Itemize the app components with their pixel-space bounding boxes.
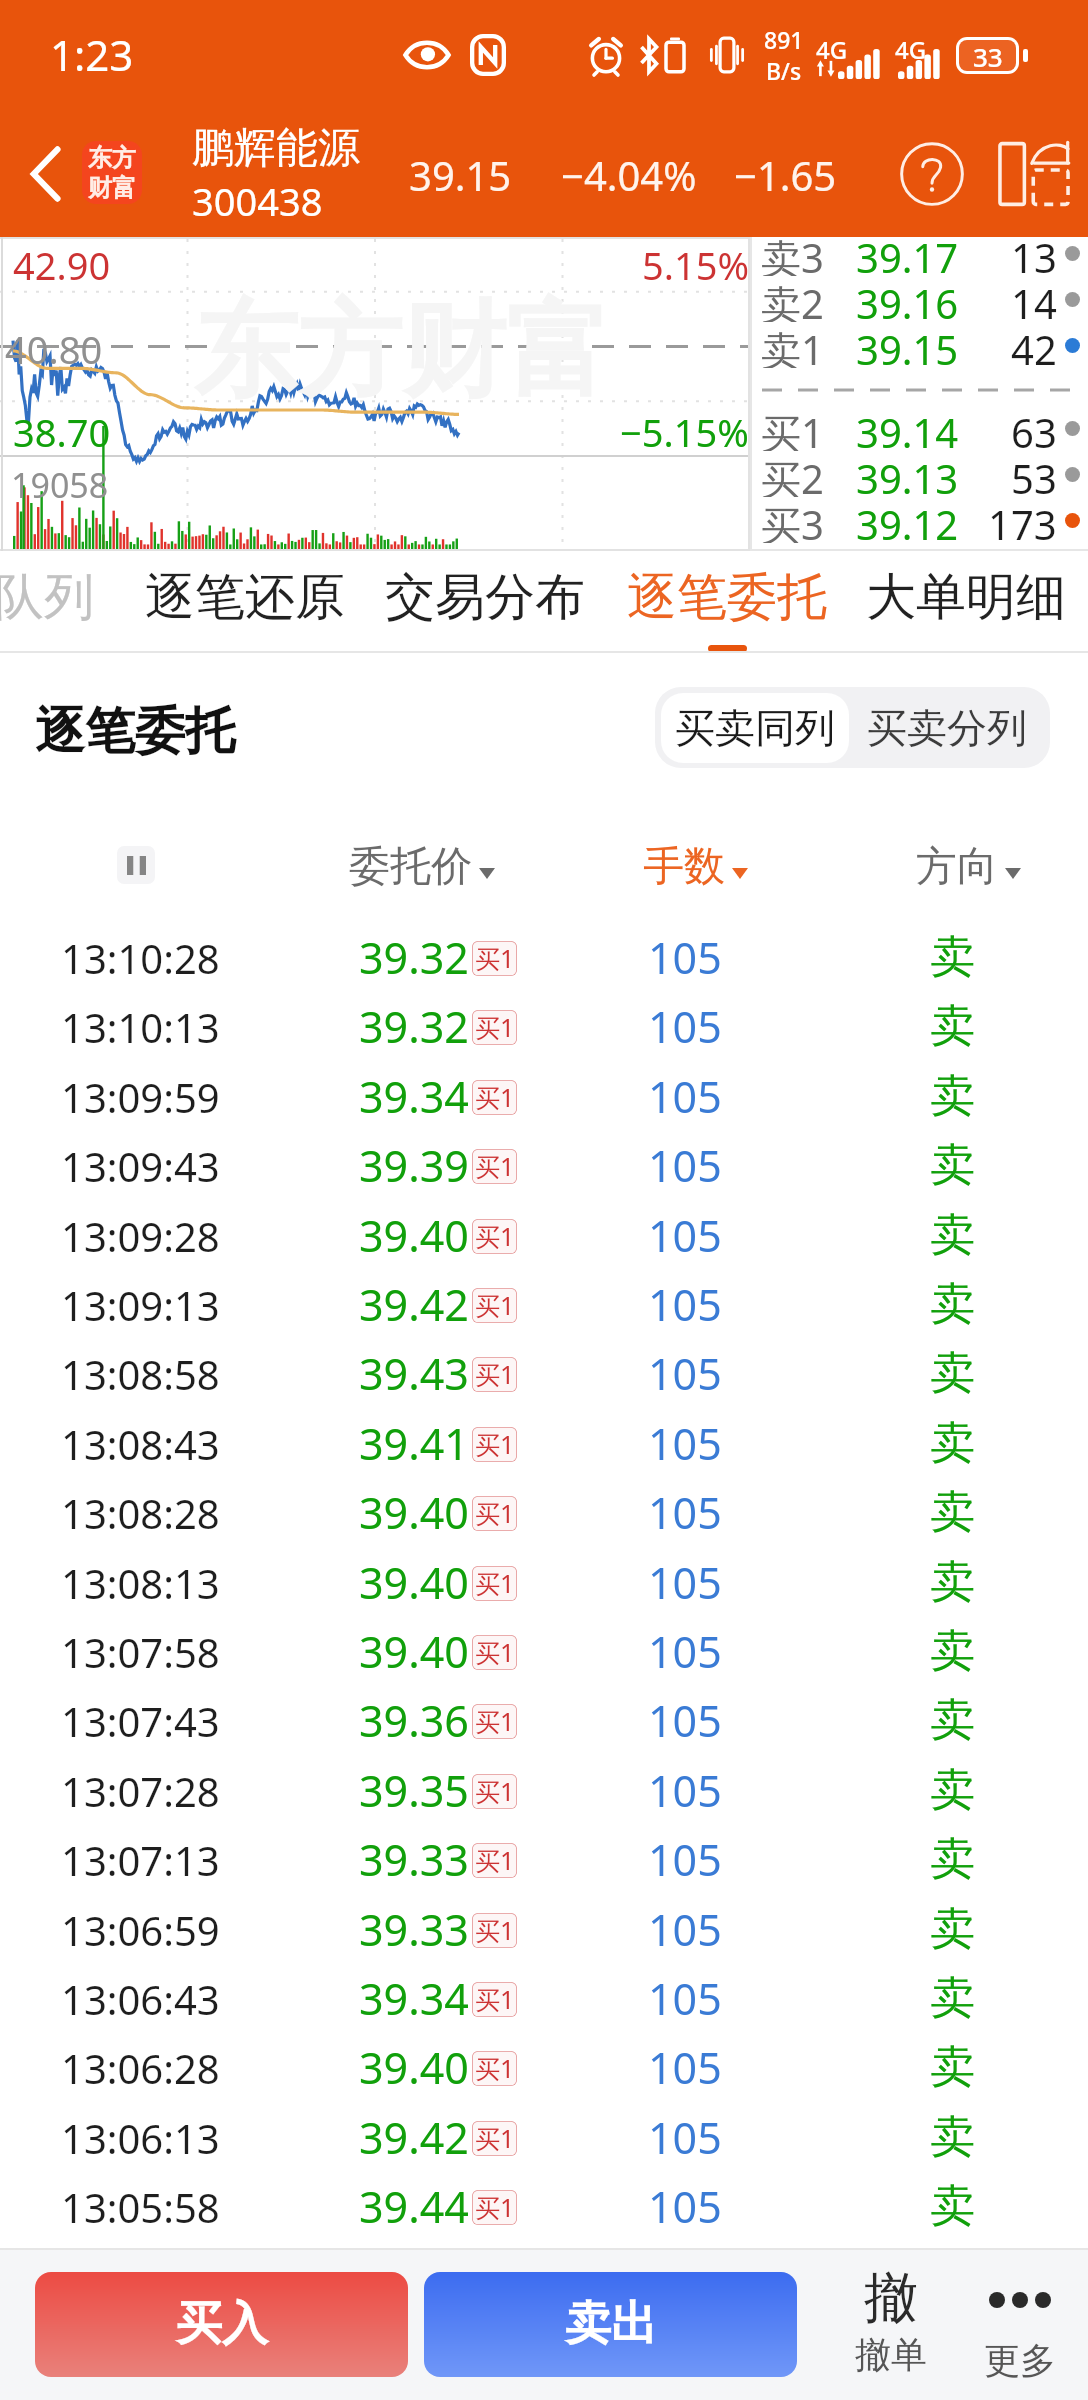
button[interactable]: 卖3 xyxy=(750,230,1088,276)
staticText: 委托价 xyxy=(349,841,472,893)
button[interactable]: 13:09:59 xyxy=(0,1063,1088,1132)
staticText: 买1 xyxy=(475,2121,515,2155)
button[interactable]: 交易分布 xyxy=(381,551,589,653)
staticText: 卖 xyxy=(930,2178,975,2235)
button[interactable]: 逐笔还原 xyxy=(141,551,349,653)
button[interactable]: 买2 xyxy=(750,451,1088,497)
staticText: 卖出 xyxy=(565,2295,657,2353)
staticText: 39.13 xyxy=(856,451,959,497)
staticText: 买卖分列 xyxy=(867,703,1027,753)
staticText: 105 xyxy=(648,1067,722,1126)
button[interactable]: 买卖同列 xyxy=(661,693,849,763)
staticText: B/s xyxy=(766,55,802,86)
staticText: 13:09:59 xyxy=(61,1070,220,1124)
staticText: 13:08:43 xyxy=(61,1417,220,1471)
staticText: 39.33 xyxy=(359,1900,469,1959)
button[interactable]: 队列 xyxy=(0,551,148,653)
button[interactable]: 13:06:59 xyxy=(0,1896,1088,1965)
button[interactable]: 更多 xyxy=(952,2250,1088,2400)
staticText: 买1 xyxy=(475,2190,515,2224)
staticText: 4G xyxy=(816,33,848,66)
staticText: 39.40 xyxy=(359,1622,469,1681)
staticText: 买1 xyxy=(475,1288,515,1322)
staticText: 买3 xyxy=(761,497,824,543)
button[interactable]: 13:07:58 xyxy=(0,1618,1088,1687)
staticText: 39.32 xyxy=(359,928,469,987)
staticText: 13:09:13 xyxy=(61,1278,220,1332)
staticText: 39.40 xyxy=(359,1553,469,1612)
staticText: 逐笔委托 xyxy=(35,700,235,763)
staticText: 39.42 xyxy=(359,2108,469,2167)
button[interactable]: 买3 xyxy=(750,497,1088,543)
staticText: 13:09:28 xyxy=(61,1209,220,1263)
button[interactable]: 13:08:13 xyxy=(0,1549,1088,1618)
staticText: 买1 xyxy=(475,2051,515,2085)
staticText: 13:08:58 xyxy=(61,1347,220,1401)
button[interactable]: 13:08:43 xyxy=(0,1410,1088,1479)
staticText: 卖 xyxy=(930,1901,975,1958)
button[interactable]: 13:08:58 xyxy=(0,1340,1088,1409)
button[interactable]: 帮助 xyxy=(880,114,984,234)
staticText: 39.40 xyxy=(359,2038,469,2097)
button[interactable]: 方向 xyxy=(858,810,1078,924)
button[interactable]: 13:07:43 xyxy=(0,1687,1088,1756)
button[interactable]: 买1 xyxy=(750,405,1088,451)
staticText: 手数 xyxy=(643,841,725,893)
button[interactable]: 13:08:28 xyxy=(0,1479,1088,1548)
button[interactable]: 委托价 xyxy=(312,810,532,924)
staticText: 105 xyxy=(648,2177,722,2236)
staticText: 53 xyxy=(1011,451,1057,497)
staticText: 13:08:28 xyxy=(61,1486,220,1540)
staticText: 撤单 xyxy=(855,2332,927,2377)
staticText: 40.80 xyxy=(5,323,103,375)
button[interactable]: 卖2 xyxy=(750,276,1088,322)
staticText: 105 xyxy=(648,1136,722,1195)
staticText: 13:06:13 xyxy=(61,2111,220,2165)
button[interactable]: 返回 xyxy=(0,114,92,234)
staticText: 13:10:13 xyxy=(61,1000,220,1054)
staticText: 买1 xyxy=(475,1496,515,1530)
staticText: 39.16 xyxy=(856,276,959,322)
staticText: 卖 xyxy=(930,998,975,1055)
staticText: 39.12 xyxy=(856,497,959,543)
staticText: 39.34 xyxy=(359,1067,469,1126)
staticText: 交易分布 xyxy=(385,566,585,629)
button[interactable]: 手数 xyxy=(585,810,805,924)
staticText: 买1 xyxy=(475,1913,515,1947)
staticText: 买1 xyxy=(475,1357,515,1391)
button[interactable]: 13:07:28 xyxy=(0,1757,1088,1826)
staticText: 买1 xyxy=(475,1080,515,1114)
staticText: 买1 xyxy=(475,1704,515,1738)
staticText: 卖2 xyxy=(761,276,824,322)
button[interactable]: 暂停刷新 xyxy=(117,846,155,884)
button[interactable]: 13:10:28 xyxy=(0,924,1088,993)
staticText: 33 xyxy=(973,40,1003,70)
button[interactable]: 卖1 xyxy=(750,322,1088,368)
button[interactable]: 13:10:13 xyxy=(0,993,1088,1062)
staticText: 买入 xyxy=(176,2295,268,2353)
button[interactable]: 13:09:13 xyxy=(0,1271,1088,1340)
staticText: 卖 xyxy=(930,2039,975,2096)
button[interactable]: 横屏 xyxy=(986,114,1082,234)
staticText: 39.14 xyxy=(856,405,959,451)
button[interactable]: 大单明细 xyxy=(862,551,1070,653)
button[interactable]: 13:07:13 xyxy=(0,1826,1088,1895)
staticText: 13:06:43 xyxy=(61,1972,220,2026)
staticText: 39.15 xyxy=(856,322,959,368)
button[interactable]: 13:06:28 xyxy=(0,2034,1088,2103)
button[interactable]: 买入 xyxy=(35,2272,408,2377)
staticText: 买1 xyxy=(475,941,515,975)
button[interactable]: 卖出 xyxy=(424,2272,797,2377)
staticText: 鹏辉能源 xyxy=(192,122,360,175)
button[interactable]: 13:06:43 xyxy=(0,1965,1088,2034)
staticText: 105 xyxy=(648,997,722,1056)
button[interactable]: 13:05:58 xyxy=(0,2173,1088,2242)
button[interactable]: 13:06:13 xyxy=(0,2104,1088,2173)
button[interactable]: 13:09:43 xyxy=(0,1132,1088,1201)
button[interactable]: 13:09:28 xyxy=(0,1202,1088,1271)
staticText: 卖 xyxy=(930,1762,975,1819)
staticText: 105 xyxy=(648,1414,722,1473)
button[interactable]: 撤 xyxy=(821,2250,961,2400)
button[interactable]: 买卖分列 xyxy=(849,693,1044,763)
button[interactable]: 逐笔委托 xyxy=(623,551,831,653)
